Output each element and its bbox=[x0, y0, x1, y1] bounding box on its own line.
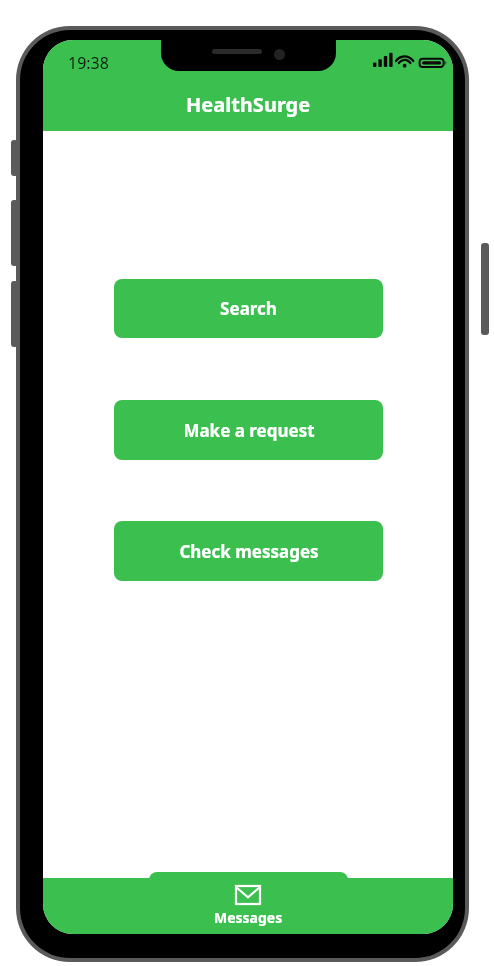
button[interactable]: Make a request bbox=[114, 400, 383, 460]
button[interactable]: Check messages bbox=[114, 521, 383, 581]
staticText: Check messages bbox=[179, 540, 319, 563]
staticText: HealthSurge bbox=[186, 91, 311, 118]
staticText: Messages bbox=[214, 908, 283, 927]
staticText: Make a request bbox=[183, 419, 315, 442]
staticText: Search bbox=[220, 297, 277, 320]
button[interactable]: Messages bbox=[43, 878, 453, 934]
staticText: Sign Out bbox=[212, 883, 285, 906]
button[interactable]: Search bbox=[114, 279, 383, 338]
other: Messages bbox=[235, 885, 261, 905]
button[interactable]: Sign Out bbox=[149, 872, 348, 916]
staticText: 19:38 bbox=[68, 52, 109, 74]
